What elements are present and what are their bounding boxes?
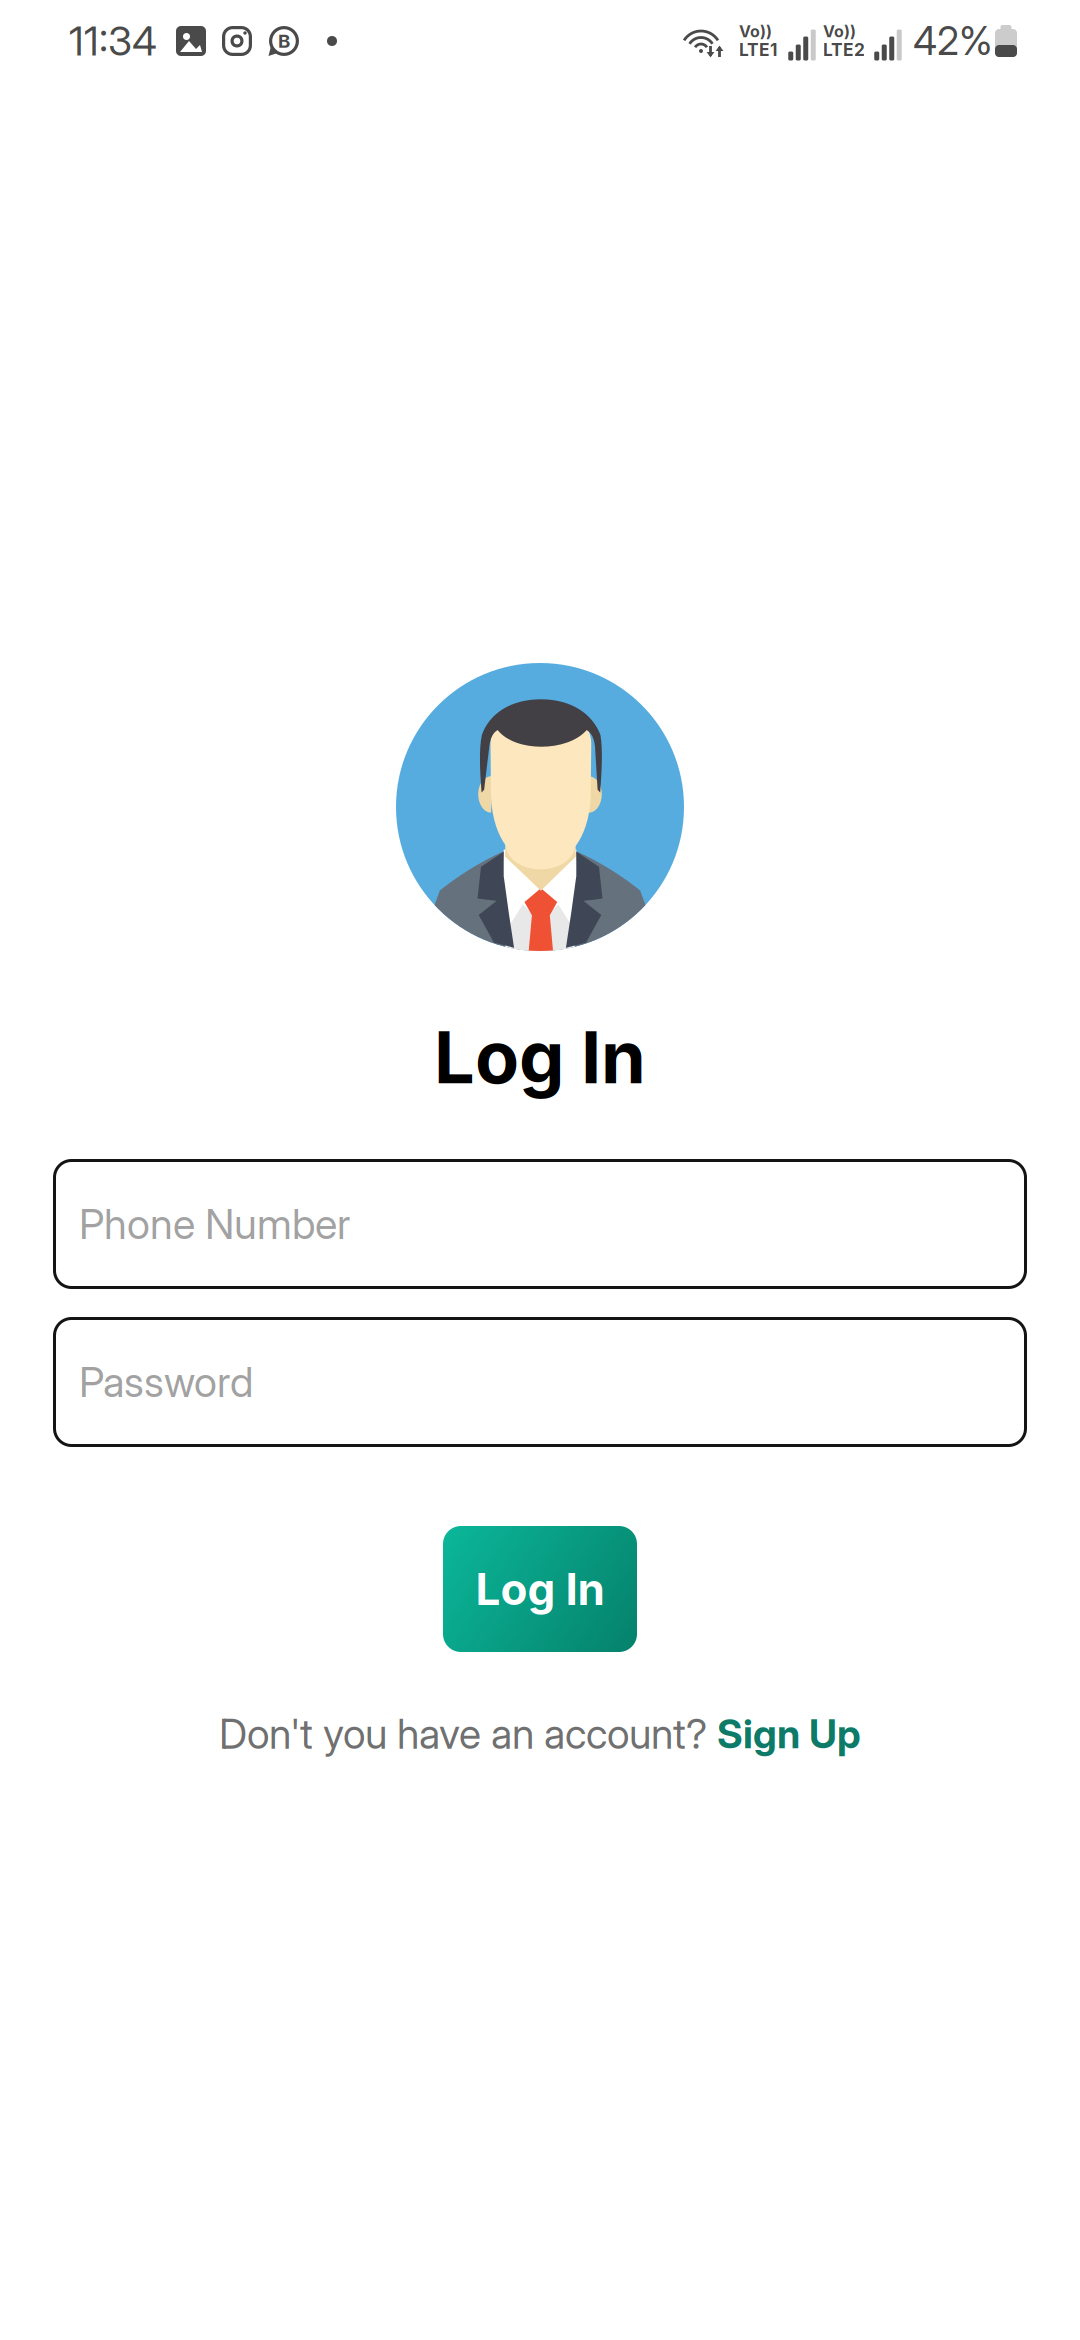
- staticText: LTE1: [739, 39, 777, 60]
- staticText: LTE2: [823, 39, 865, 60]
- staticText: Don't you have an account?: [219, 1709, 717, 1759]
- staticText: Log In: [434, 1013, 646, 1100]
- staticText: Vo)): [739, 22, 772, 41]
- button[interactable]: Password: [53, 1317, 1027, 1447]
- button[interactable]: Phone Number: [53, 1159, 1027, 1289]
- staticText: Log In: [475, 1562, 604, 1616]
- staticText: Vo)): [823, 22, 856, 41]
- button[interactable]: Sign Up: [717, 1710, 861, 1758]
- staticText: 11:34: [69, 17, 157, 65]
- staticText: Phone Number: [79, 1199, 350, 1249]
- button[interactable]: Log In: [443, 1526, 637, 1652]
- staticText: Password: [79, 1357, 253, 1407]
- staticText: Sign Up: [717, 1710, 861, 1758]
- staticText: 42%: [913, 18, 993, 64]
- staticText: B: [278, 30, 290, 52]
